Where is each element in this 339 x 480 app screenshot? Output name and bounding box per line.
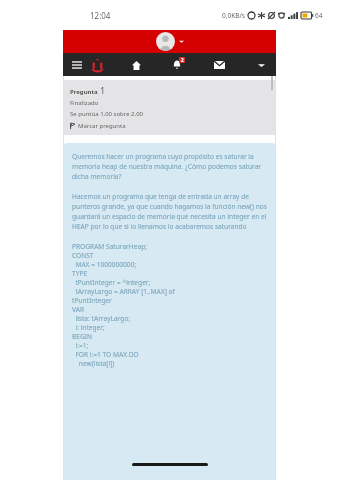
button[interactable]: Home: [127, 56, 145, 74]
staticText: PROGRAM SaturarHeap;: [72, 242, 147, 251]
button[interactable]: Account menu: [179, 39, 184, 44]
staticText: VAR: [72, 305, 85, 314]
button[interactable]: More options: [252, 56, 270, 74]
staticText: lista: tArrayLargo;: [72, 314, 131, 323]
staticText: 0,0KB/s: [222, 11, 245, 20]
staticText: Hacemos un programa que tenga de entrada…: [72, 192, 269, 231]
staticText: Pregunta: [70, 88, 100, 96]
button[interactable]: Marcar pregunta: [70, 122, 126, 130]
staticText: i: integer;: [72, 323, 105, 332]
staticText: tPuntInteger: [72, 296, 112, 305]
staticText: tArrayLargo = ARRAY [1..MAX] of: [72, 287, 175, 296]
staticText: CONST: [72, 251, 94, 260]
staticText: Finalizado: [70, 99, 99, 107]
staticText: Queremos hacer un programa cuyo propósit…: [72, 152, 269, 181]
staticText: 12:04: [90, 10, 111, 21]
staticText: tPuntInteger = ^integer;: [72, 278, 151, 287]
staticText: MAX = 1000000000;: [72, 260, 137, 269]
button[interactable]: Profile: [156, 32, 175, 51]
button[interactable]: Messages: [210, 56, 228, 74]
staticText: i:=1;: [72, 341, 89, 350]
staticText: Marcar pregunta: [78, 122, 126, 130]
button[interactable]: UNED home: [90, 56, 104, 74]
staticText: Se puntúa 1,00 sobre 2,00: [70, 110, 144, 118]
button[interactable]: Pregunta: [64, 80, 275, 135]
staticText: BEGIN: [72, 332, 92, 341]
staticText: new(lista[i]): [72, 359, 115, 368]
staticText: TYPE: [72, 269, 88, 278]
button[interactable]: Menu: [70, 56, 84, 74]
button[interactable]: Notifications, 2 unread: [168, 56, 186, 74]
staticText: FOR i:=1 TO MAX DO: [72, 350, 139, 359]
staticText: 2: [181, 57, 184, 63]
staticText: 64: [315, 11, 323, 20]
staticText: 1: [100, 84, 106, 96]
